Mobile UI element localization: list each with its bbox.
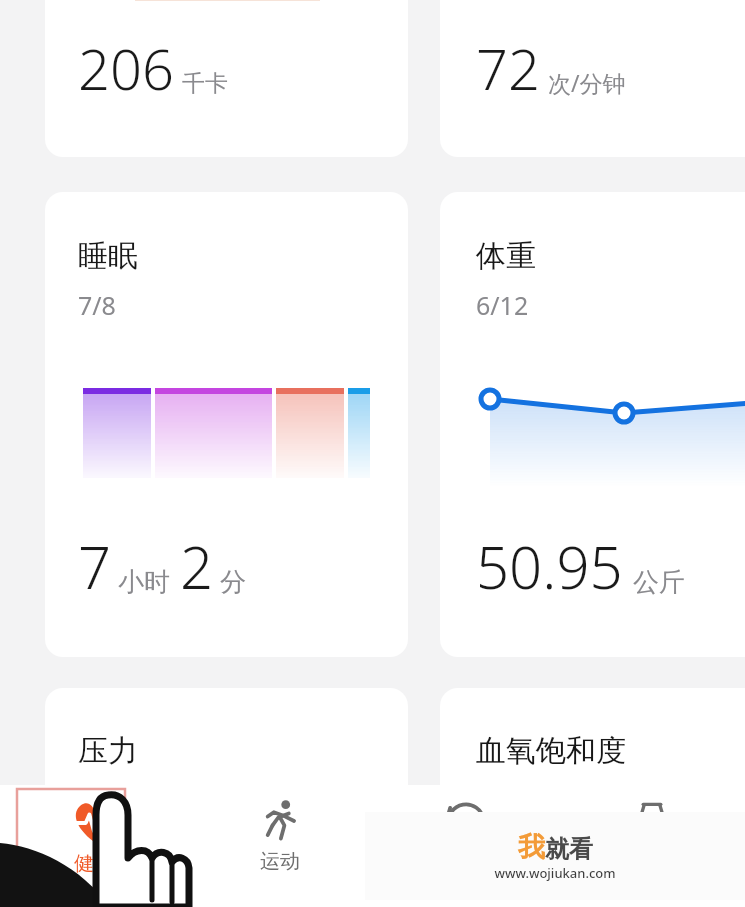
staticText: 千卡 — [182, 69, 228, 98]
staticText: 睡眠 — [78, 237, 138, 275]
staticText: 2 — [180, 527, 214, 606]
button[interactable]: 健康 — [0, 785, 187, 907]
other: 我的设备 — [630, 799, 674, 843]
button[interactable]: 206 — [45, 0, 408, 157]
button[interactable]: 72 — [440, 0, 745, 157]
other: 运动 — [258, 799, 302, 843]
staticText: 血氧饱和度 — [476, 732, 626, 770]
staticText: 6/12 — [476, 288, 529, 322]
other: 发现 — [444, 799, 488, 843]
staticText: 7 — [78, 527, 112, 606]
staticText: 72 — [476, 30, 540, 106]
staticText: 体重 — [476, 237, 536, 275]
staticText: 50.95 — [476, 527, 623, 606]
staticText: 206 — [78, 30, 174, 106]
staticText: 就看 — [545, 834, 593, 864]
button[interactable]: 运动 — [187, 785, 373, 907]
button[interactable]: 体重 — [440, 192, 745, 657]
staticText: 我 — [518, 830, 545, 864]
staticText: 7/8 — [78, 288, 116, 322]
staticText: 小时 — [118, 566, 170, 599]
staticText: 压力 — [78, 732, 138, 770]
button[interactable]: 我的设备 — [559, 785, 745, 907]
staticText: 运动 — [260, 849, 300, 874]
staticText: 分 — [220, 566, 246, 599]
button[interactable]: 睡眠 — [45, 192, 408, 657]
staticText: 公斤 — [633, 566, 685, 599]
button[interactable]: 压力 — [45, 688, 408, 888]
button[interactable]: 发现 — [373, 785, 559, 907]
other: 健康 — [71, 799, 117, 845]
staticText: 次/分钟 — [548, 67, 626, 98]
staticText: 健康 — [74, 851, 114, 876]
staticText: www.wojiukan.com — [494, 864, 616, 882]
button[interactable]: 血氧饱和度 — [440, 688, 745, 888]
